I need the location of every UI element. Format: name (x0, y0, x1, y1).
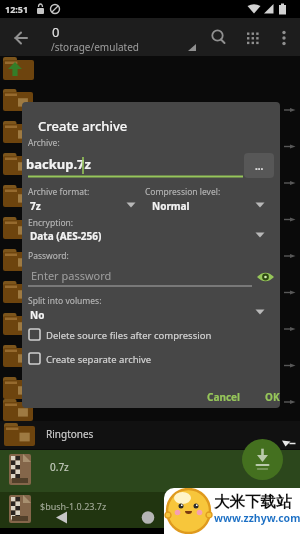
button[interactable] (27, 147, 237, 175)
staticText: 12:51 (5, 3, 29, 15)
staticText: Archive format: (28, 186, 90, 198)
staticText: /storage/emulated (51, 40, 139, 54)
staticText: backup.7z (26, 155, 91, 173)
button[interactable] (27, 296, 267, 314)
staticText: www.zzhyw.com (214, 511, 300, 525)
button[interactable] (147, 192, 262, 210)
staticText: Data (AES-256) (30, 229, 102, 243)
staticText: OK (265, 390, 280, 404)
staticText: $bush-1.0.23.7z (40, 500, 107, 512)
button[interactable]: Cancel (194, 386, 254, 407)
button[interactable]: ... (244, 153, 274, 178)
staticText: Enter password (31, 268, 112, 283)
staticText: 0 (52, 23, 60, 41)
button[interactable] (0, 421, 300, 449)
staticText: Create separate archive (46, 353, 152, 366)
staticText: No (30, 308, 45, 322)
button[interactable] (8, 26, 36, 50)
button[interactable] (240, 24, 266, 50)
staticText: 0.7z (50, 460, 69, 474)
staticText: Split into volumes: (28, 295, 102, 307)
staticText: Encryption: (28, 217, 74, 229)
staticText: Archive: (28, 137, 60, 149)
button[interactable] (27, 253, 247, 273)
button[interactable] (27, 329, 267, 347)
staticText: Password: (28, 250, 69, 262)
staticText: Compression level: (145, 186, 221, 198)
button[interactable] (0, 492, 300, 528)
staticText: Delete source files after compression (46, 329, 212, 342)
button[interactable]: OK (260, 386, 280, 407)
button[interactable] (27, 352, 267, 370)
staticText: Normal (152, 199, 190, 213)
staticText: 7z (30, 199, 41, 213)
button[interactable] (205, 24, 231, 50)
button[interactable] (0, 450, 300, 492)
staticText: 大米下载站 (214, 492, 292, 512)
button[interactable] (27, 192, 132, 210)
button[interactable] (27, 221, 267, 239)
staticText: Create archive (38, 117, 128, 135)
staticText: Cancel (207, 390, 241, 404)
button[interactable] (242, 439, 283, 480)
button[interactable] (272, 24, 296, 50)
button[interactable] (250, 262, 278, 284)
staticText: ... (255, 159, 264, 173)
staticText: Ringtones (46, 427, 94, 441)
